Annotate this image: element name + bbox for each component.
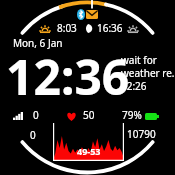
button[interactable]: Signal strength 0 <box>13 108 39 122</box>
staticText: 79% <box>122 108 142 122</box>
staticText: 0 <box>30 128 36 142</box>
staticText: 0 <box>33 108 39 122</box>
staticText: 49-53 <box>77 145 101 157</box>
button[interactable]: Battery 79 percent <box>122 108 159 122</box>
button[interactable]: Bluetooth connected <box>77 9 85 20</box>
staticText: 12:26 <box>121 79 147 93</box>
staticText: 10790 <box>127 127 156 141</box>
button[interactable]: Heart rate 50 <box>66 108 95 122</box>
staticText: wait for <box>121 53 157 67</box>
button[interactable]: Unread messages <box>86 10 98 19</box>
button[interactable]: Heart rate history 49 to 53 <box>53 123 124 161</box>
button[interactable]: 12:36 <box>6 44 130 109</box>
button[interactable]: Sunrise 8:03, sunset 16:36 <box>40 21 138 35</box>
staticText: 8:03 <box>57 21 77 35</box>
staticText: Mon, 6 Jan <box>13 36 63 50</box>
staticText: 50 <box>83 108 95 122</box>
button[interactable]: Weather: wait for weather report <box>121 52 175 92</box>
staticText: 16:36 <box>97 21 123 35</box>
staticText: weather re. <box>121 66 175 80</box>
